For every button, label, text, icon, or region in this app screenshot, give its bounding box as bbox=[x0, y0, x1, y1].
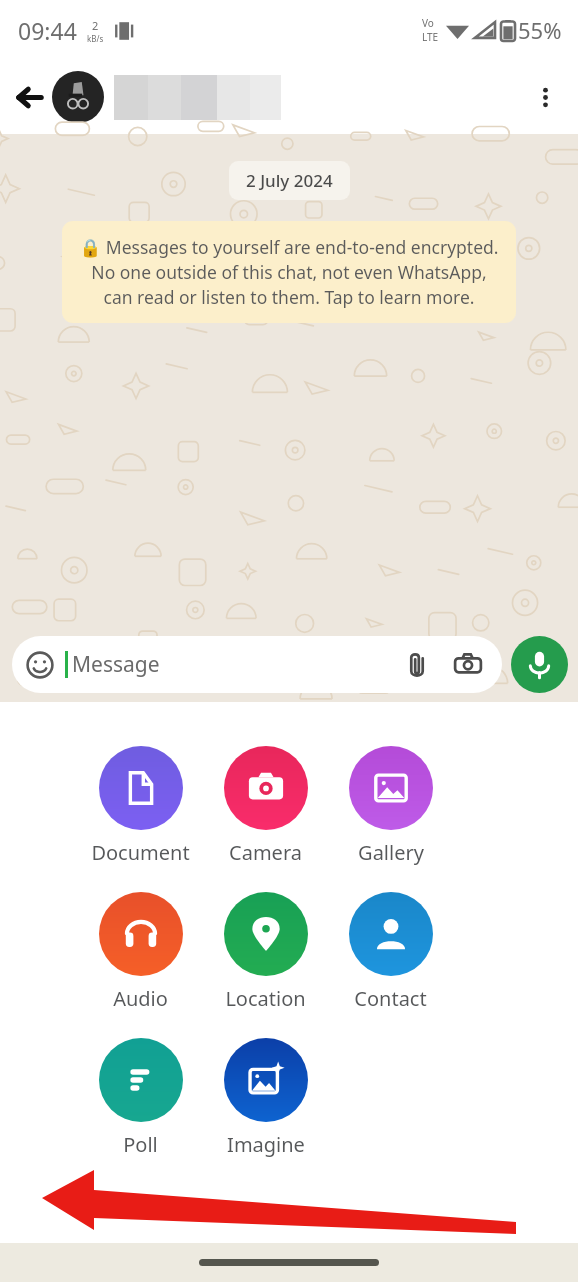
button[interactable]: Document bbox=[78, 746, 203, 866]
staticText: Message bbox=[72, 650, 160, 679]
staticText: Audio bbox=[113, 985, 168, 1012]
button[interactable]: Camera bbox=[448, 645, 488, 685]
button[interactable]: Camera bbox=[203, 746, 328, 866]
staticText: 🔒 Messages to yourself are end-to-end en… bbox=[75, 235, 503, 309]
button[interactable]: 🔒 Messages to yourself are end-to-end en… bbox=[62, 221, 516, 323]
staticText: LTE bbox=[422, 30, 439, 44]
button[interactable]: Imagine bbox=[203, 1038, 328, 1158]
staticText: kB/s bbox=[87, 33, 104, 44]
button[interactable]: Contact bbox=[328, 892, 453, 1012]
staticText: Camera bbox=[229, 839, 302, 866]
staticText: Vo bbox=[422, 16, 434, 30]
staticText: 2 July 2024 bbox=[246, 169, 333, 192]
button[interactable]: Back bbox=[6, 74, 52, 120]
staticText: Location bbox=[225, 985, 306, 1012]
button[interactable]: Poll bbox=[78, 1038, 203, 1158]
staticText: Contact bbox=[354, 985, 427, 1012]
button[interactable]: Voice message bbox=[511, 636, 568, 693]
button[interactable]: Home gesture bar bbox=[199, 1259, 379, 1266]
button[interactable]: Audio bbox=[78, 892, 203, 1012]
staticText: Poll bbox=[123, 1131, 158, 1158]
button[interactable]: Location bbox=[203, 892, 328, 1012]
button[interactable]: Gallery bbox=[328, 746, 453, 866]
staticText: 09:44 bbox=[18, 15, 77, 46]
button[interactable]: More options bbox=[522, 74, 568, 120]
button[interactable]: 2 July 2024 bbox=[229, 161, 350, 200]
staticText: Imagine bbox=[227, 1131, 305, 1158]
staticText: 55% bbox=[518, 15, 562, 45]
button[interactable]: Attach bbox=[397, 645, 437, 685]
button[interactable]: Message bbox=[12, 636, 502, 693]
staticText: Gallery bbox=[358, 839, 424, 866]
button[interactable]: Profile photo bbox=[52, 71, 104, 123]
staticText: 2 bbox=[92, 18, 99, 33]
staticText: Document bbox=[91, 839, 190, 866]
